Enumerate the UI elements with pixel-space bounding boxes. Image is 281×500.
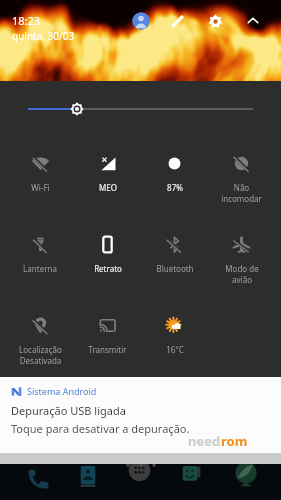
button[interactable]: All apps <box>126 459 153 486</box>
button[interactable]: Brightness <box>0 81 281 139</box>
staticText: Bluetooth <box>156 263 194 274</box>
button[interactable]: Sistema Android <box>0 377 281 453</box>
staticText: Sistema Android <box>27 385 97 397</box>
button[interactable]: 16°C <box>141 310 208 391</box>
button[interactable]: Lanterna <box>6 229 74 310</box>
staticText: need <box>188 432 221 450</box>
staticText: Modo de avião <box>225 263 259 285</box>
staticText: Localização Desativada <box>19 344 62 366</box>
button[interactable]: Phone <box>25 466 51 492</box>
staticText: Retrato <box>94 263 122 274</box>
button[interactable]: User account <box>132 12 150 30</box>
button[interactable]: Collapse <box>246 14 260 28</box>
button[interactable]: Wi-Fi <box>6 148 74 229</box>
button[interactable]: Bluetooth <box>141 229 208 310</box>
button[interactable]: Browser <box>232 461 260 489</box>
button[interactable]: Settings <box>208 14 223 29</box>
button[interactable]: Modo de avião <box>208 229 275 310</box>
button[interactable]: Messages <box>75 464 101 490</box>
staticText: 18:23 <box>12 13 41 28</box>
staticText: Transmitir <box>88 344 127 355</box>
button[interactable]: Transmitir <box>74 310 141 391</box>
staticText: quinta, 30/03 <box>12 29 75 43</box>
staticText: Depuração USB ligada <box>11 403 126 418</box>
staticText: MEO <box>99 182 117 193</box>
staticText: Não incomodar <box>221 182 262 204</box>
button[interactable]: Localização Desativada <box>6 310 74 391</box>
button[interactable]: Retrato <box>74 229 141 310</box>
staticText: 87% <box>167 182 183 193</box>
staticText: Wi-Fi <box>31 182 50 193</box>
button[interactable] <box>208 310 275 391</box>
button[interactable]: MEO <box>74 148 141 229</box>
staticText: 16°C <box>166 344 184 355</box>
button[interactable]: Edit tiles <box>170 13 186 29</box>
staticText: rom <box>221 432 248 450</box>
staticText: Lanterna <box>23 263 57 274</box>
button[interactable]: 87% <box>141 148 208 229</box>
button[interactable]: Não incomodar <box>208 148 275 229</box>
button[interactable]: Android <box>178 463 204 489</box>
staticText: Toque para desativar a depuração. <box>11 421 190 436</box>
